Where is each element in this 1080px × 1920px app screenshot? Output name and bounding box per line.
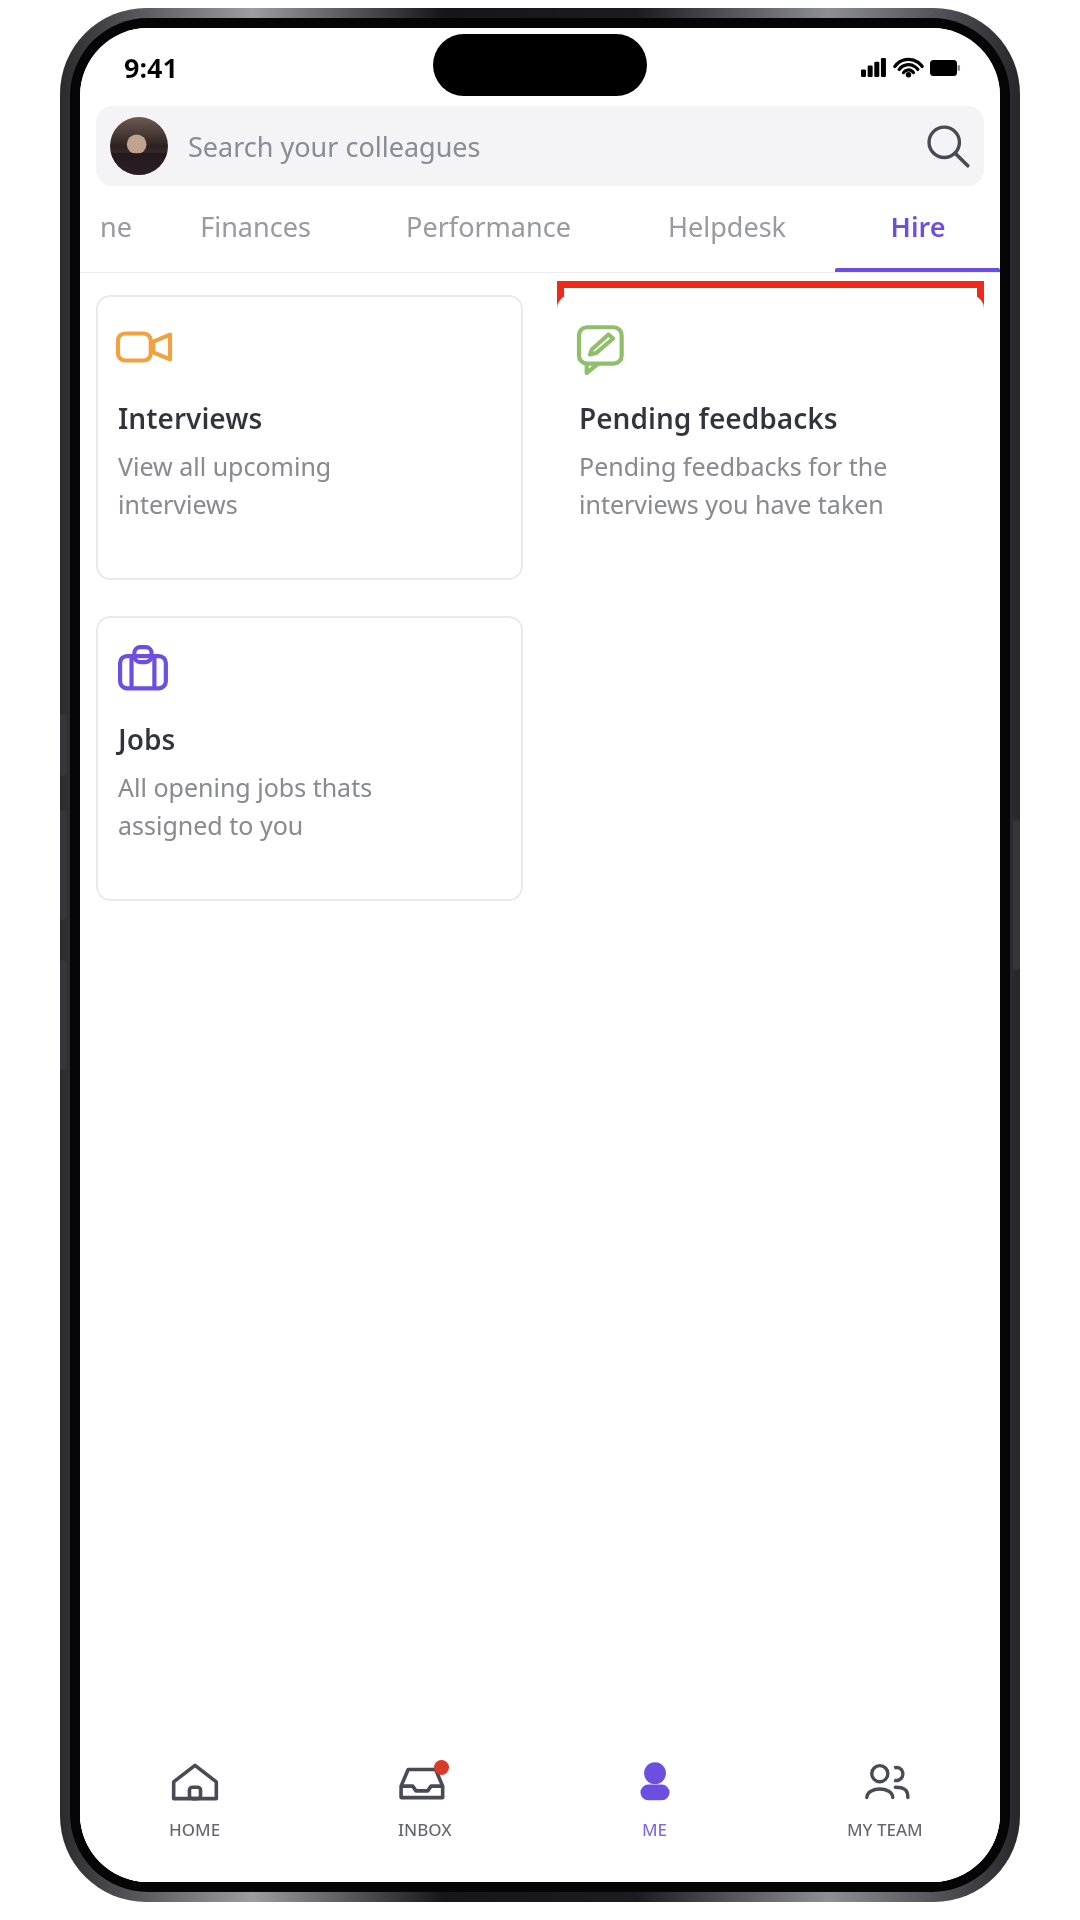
staticText: View all upcoming interviews (118, 449, 332, 521)
other: Search (924, 123, 970, 169)
button[interactable]: Jobs (96, 616, 523, 901)
staticText: Finances (200, 208, 311, 245)
button[interactable]: Inbox (310, 1732, 540, 1882)
staticText: Pending feedbacks for the interviews you… (579, 449, 888, 521)
staticText: HOME (169, 1818, 221, 1841)
staticText: Helpdesk (668, 208, 786, 245)
staticText: All opening jobs thats assigned to you (118, 770, 373, 842)
staticText: INBOX (398, 1818, 452, 1841)
button[interactable]: Performance (359, 204, 618, 272)
button[interactable]: My team (770, 1732, 1000, 1882)
button[interactable]: Pending feedbacks (557, 295, 984, 580)
button[interactable]: Interviews (96, 295, 523, 580)
button[interactable]: Finances (152, 204, 359, 272)
staticText: Search your colleagues (188, 128, 481, 165)
staticText: MY TEAM (847, 1818, 923, 1841)
staticText: 9:41 (124, 49, 178, 86)
button[interactable]: Home (80, 1732, 310, 1882)
staticText: ME (642, 1818, 668, 1841)
staticText: ne (100, 208, 132, 245)
button[interactable]: Me (540, 1732, 770, 1882)
button[interactable]: Search your colleagues (96, 106, 984, 186)
staticText: Hire (890, 208, 946, 245)
staticText: Pending feedbacks (579, 399, 838, 437)
staticText: Performance (406, 208, 571, 245)
button[interactable]: Helpdesk (618, 204, 835, 272)
staticText: Interviews (118, 399, 263, 437)
staticText: Jobs (118, 720, 176, 758)
button[interactable]: Hire (835, 204, 1000, 272)
button[interactable]: ne (80, 204, 152, 272)
